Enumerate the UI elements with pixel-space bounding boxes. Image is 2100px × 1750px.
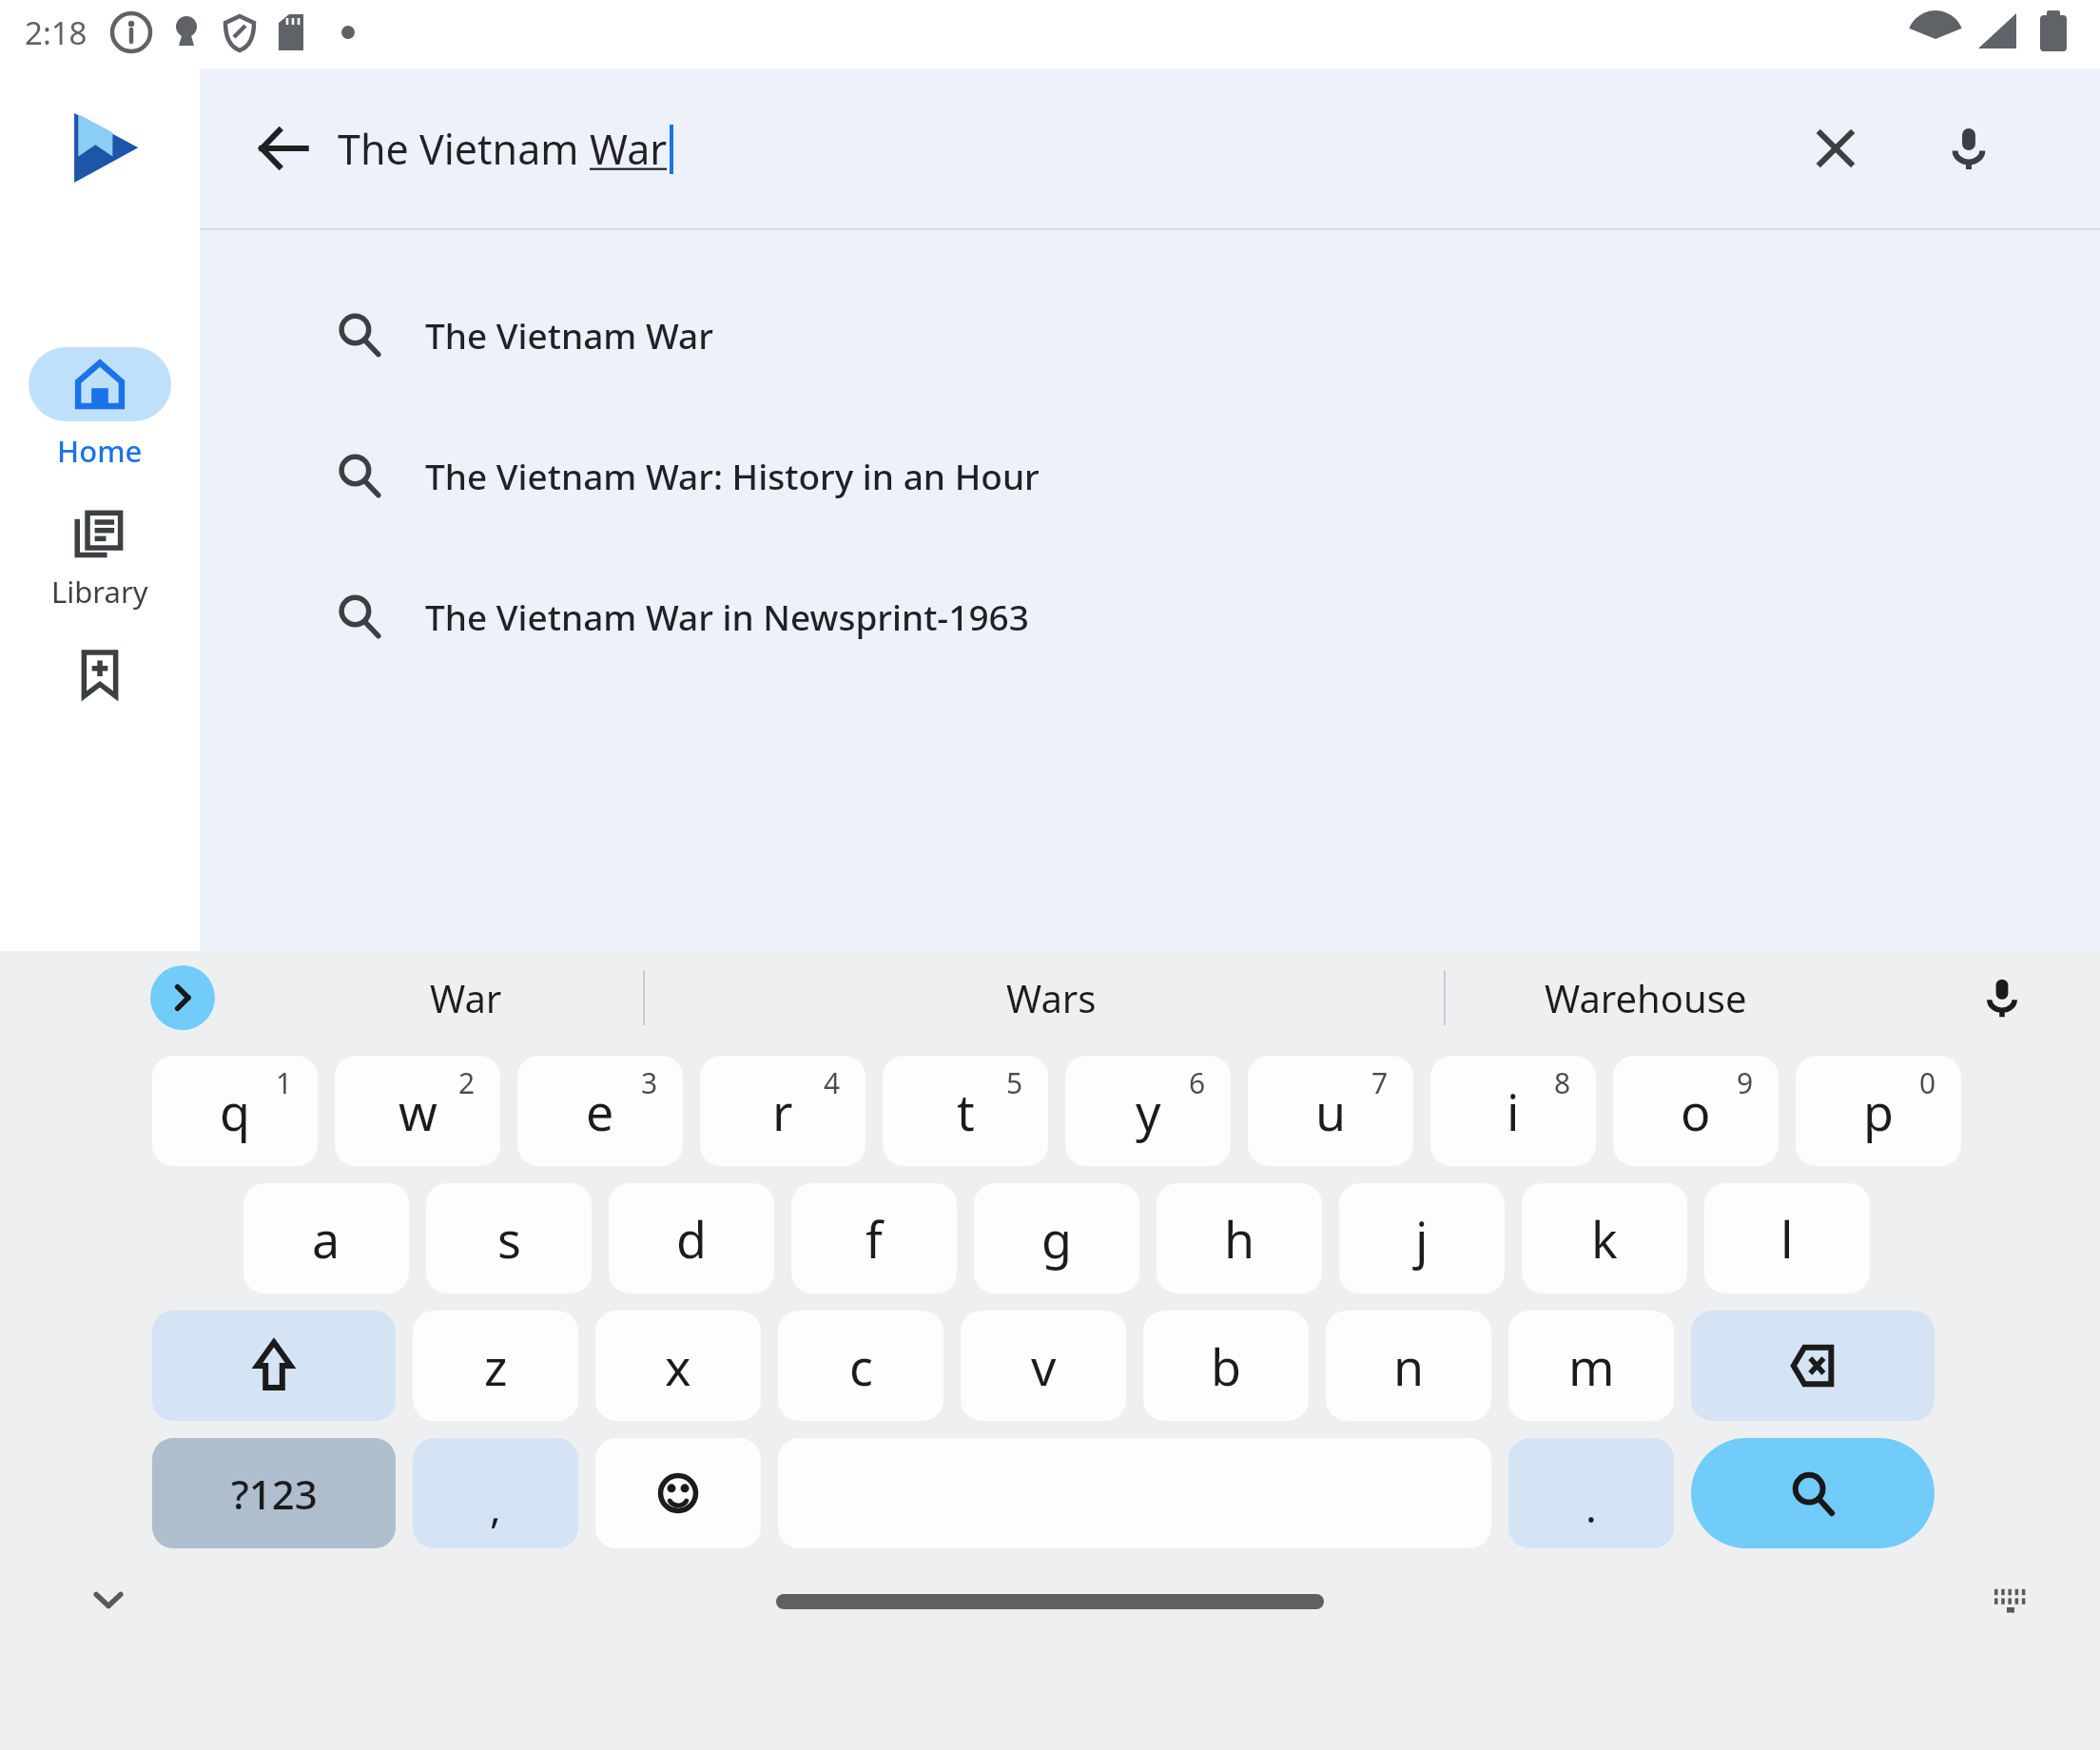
button[interactable]: h <box>1157 1183 1322 1293</box>
button[interactable]: n <box>1326 1311 1491 1421</box>
staticText: g <box>1041 1205 1072 1273</box>
staticText: 7 <box>1371 1063 1389 1102</box>
staticText: z <box>484 1332 508 1400</box>
button[interactable]: Library <box>0 509 200 612</box>
button[interactable]: v <box>961 1311 1126 1421</box>
staticText: 5 <box>1006 1063 1023 1102</box>
button[interactable]: Backspace <box>1691 1311 1935 1421</box>
staticText: e <box>586 1078 614 1145</box>
button[interactable]: War <box>285 951 647 1044</box>
button[interactable]: g <box>974 1183 1139 1293</box>
staticText: o <box>1681 1078 1711 1145</box>
staticText: 3 <box>641 1063 658 1102</box>
button[interactable]: j <box>1339 1183 1505 1293</box>
staticText: 1 <box>276 1063 293 1102</box>
button[interactable]: s <box>426 1183 592 1293</box>
staticText: i <box>1507 1078 1520 1145</box>
button[interactable]: y <box>1065 1056 1231 1166</box>
staticText: . <box>1585 1478 1597 1535</box>
staticText: q <box>220 1078 250 1145</box>
staticText: c <box>849 1332 873 1400</box>
staticText: v <box>1031 1332 1057 1400</box>
staticText: x <box>665 1332 691 1400</box>
staticText: k <box>1591 1205 1618 1273</box>
button[interactable]: Shift <box>152 1311 396 1421</box>
button[interactable]: Emoji <box>595 1438 761 1548</box>
staticText: y <box>1136 1078 1161 1145</box>
staticText: The Vietnam <box>338 121 590 177</box>
button[interactable]: k <box>1522 1183 1687 1293</box>
button[interactable]: Voice input <box>1967 962 2037 1033</box>
staticText: r <box>772 1078 793 1145</box>
button[interactable]: q <box>152 1056 318 1166</box>
staticText: The Vietnam War <box>425 311 713 359</box>
button[interactable]: u <box>1248 1056 1413 1166</box>
staticText: 4 <box>824 1063 841 1102</box>
button[interactable]: , <box>413 1438 578 1548</box>
staticText: Library <box>51 572 148 612</box>
button[interactable]: c <box>778 1311 943 1421</box>
button[interactable]: o <box>1613 1056 1779 1166</box>
button[interactable]: a <box>243 1183 409 1293</box>
button[interactable]: f <box>791 1183 957 1293</box>
staticText: n <box>1393 1332 1425 1400</box>
button[interactable]: . <box>1508 1438 1674 1548</box>
button[interactable]: Search <box>1691 1438 1935 1548</box>
staticText: b <box>1211 1332 1241 1400</box>
button[interactable]: l <box>1704 1183 1870 1293</box>
staticText: w <box>399 1078 437 1145</box>
button[interactable]: w <box>335 1056 500 1166</box>
staticText: h <box>1224 1205 1255 1273</box>
button[interactable]: The Vietnam War in Newsprint-1963 <box>200 546 2100 687</box>
staticText: The Vietnam War: History in an Hour <box>425 452 1040 499</box>
staticText: 2:18 <box>25 11 87 54</box>
staticText: 6 <box>1189 1063 1206 1102</box>
button[interactable]: Shop <box>0 650 200 707</box>
button[interactable]: The Vietnam War <box>200 264 2100 405</box>
button[interactable]: ?123 <box>152 1438 396 1548</box>
button[interactable]: p <box>1796 1056 1961 1166</box>
button[interactable]: b <box>1143 1311 1309 1421</box>
staticText: The Vietnam War in Newsprint-1963 <box>425 593 1029 640</box>
staticText: d <box>676 1205 707 1273</box>
staticText: s <box>497 1205 521 1273</box>
staticText: , <box>490 1478 501 1535</box>
button[interactable]: r <box>700 1056 865 1166</box>
button[interactable]: Clear <box>1792 105 1879 192</box>
staticText: ?123 <box>231 1467 318 1521</box>
button[interactable]: The Vietnam War: History in an Hour <box>200 405 2100 546</box>
button[interactable]: Home <box>0 347 200 471</box>
staticText: f <box>865 1205 883 1273</box>
staticText: Warehouse <box>1545 972 1747 1023</box>
button[interactable]: Voice search <box>1925 105 2012 192</box>
staticText: p <box>1863 1078 1894 1145</box>
button[interactable]: Google Play Books <box>65 108 145 188</box>
staticText: j <box>1415 1205 1429 1273</box>
button[interactable]: Warehouse <box>1455 951 1836 1044</box>
button[interactable]: Back <box>238 103 329 194</box>
staticText: l <box>1780 1205 1794 1273</box>
button[interactable]: e <box>517 1056 683 1166</box>
staticText: a <box>312 1205 340 1273</box>
staticText: 0 <box>1919 1063 1936 1102</box>
staticText: War <box>590 121 668 177</box>
button[interactable]: z <box>413 1311 578 1421</box>
button[interactable]: m <box>1508 1311 1674 1421</box>
button[interactable]: Switch keyboard <box>1980 1569 2041 1630</box>
button[interactable]: Wars <box>656 951 1446 1044</box>
staticText: Wars <box>1006 972 1097 1023</box>
staticText: 9 <box>1737 1063 1754 1102</box>
staticText: m <box>1568 1332 1615 1400</box>
staticText: t <box>957 1078 975 1145</box>
button[interactable]: d <box>609 1183 774 1293</box>
button[interactable]: Expand suggestions <box>150 965 215 1030</box>
staticText: 8 <box>1554 1063 1571 1102</box>
button[interactable]: x <box>595 1311 761 1421</box>
button[interactable]: t <box>883 1056 1048 1166</box>
button[interactable]: i <box>1430 1056 1596 1166</box>
staticText: Home <box>57 431 143 471</box>
staticText: u <box>1315 1078 1347 1145</box>
staticText: 2 <box>458 1063 476 1102</box>
button[interactable]: Hide keyboard <box>74 1565 143 1634</box>
